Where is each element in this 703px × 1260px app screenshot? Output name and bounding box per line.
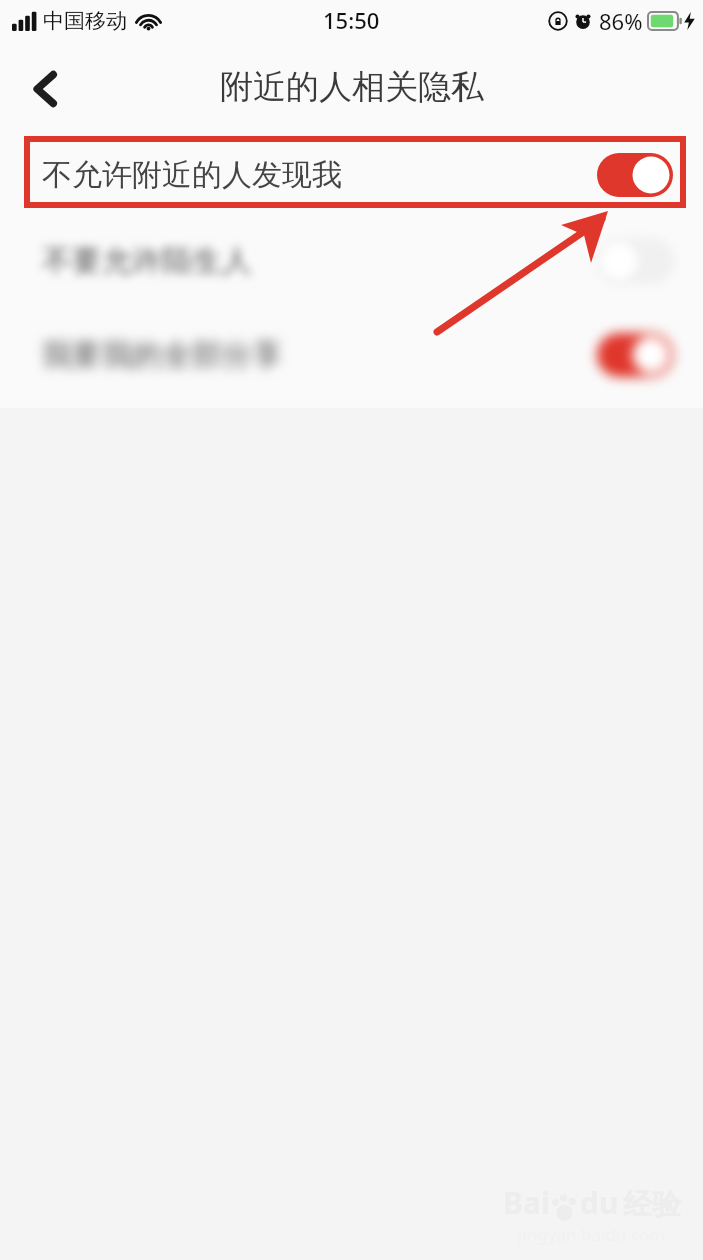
staticText: 不允许附近的人发现我 (42, 156, 342, 194)
button[interactable]: Toggle on (597, 153, 673, 197)
staticText: 15:50 (323, 5, 380, 35)
button[interactable]: 不要允许陌生人 (0, 214, 703, 308)
staticText: 我要我的全部分享 (42, 336, 282, 374)
staticText: 附近的人相关隐私 (220, 66, 484, 108)
staticText: 86% (599, 6, 643, 36)
button[interactable]: Toggle on (597, 333, 673, 377)
button[interactable]: 不允许附近的人发现我 (0, 136, 703, 214)
staticText: 经验 (623, 1186, 681, 1223)
button[interactable]: 我要我的全部分享 (0, 308, 703, 402)
staticText: Bai (503, 1182, 550, 1223)
staticText: 不要允许陌生人 (42, 242, 252, 280)
button[interactable]: Toggle off (597, 239, 673, 283)
button[interactable]: Back (0, 42, 92, 136)
staticText: 中国移动 (43, 8, 127, 34)
